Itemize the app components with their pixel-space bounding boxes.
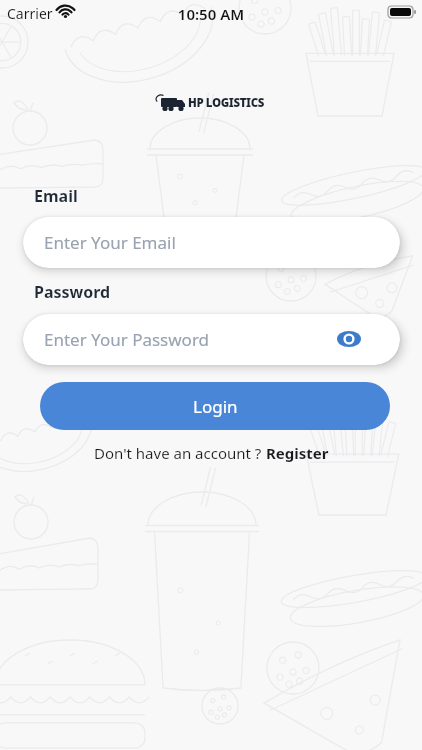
button[interactable]: Enter Your Password bbox=[23, 314, 400, 365]
staticText: HP LOGISTICS bbox=[188, 95, 265, 111]
button[interactable]: Login bbox=[40, 382, 390, 430]
button[interactable] bbox=[336, 326, 362, 352]
button[interactable]: Register bbox=[266, 443, 329, 463]
staticText: Password bbox=[34, 281, 111, 303]
staticText: Don't have an account ? bbox=[94, 443, 266, 463]
button[interactable]: Enter Your Email bbox=[23, 217, 400, 268]
staticText: Email bbox=[34, 185, 78, 207]
staticText: Enter Your Password bbox=[44, 328, 210, 351]
staticText: Carrier bbox=[7, 4, 53, 23]
staticText: Enter Your Email bbox=[44, 231, 176, 254]
staticText: 10:50 AM bbox=[0, 4, 422, 24]
staticText: Login bbox=[193, 395, 238, 418]
